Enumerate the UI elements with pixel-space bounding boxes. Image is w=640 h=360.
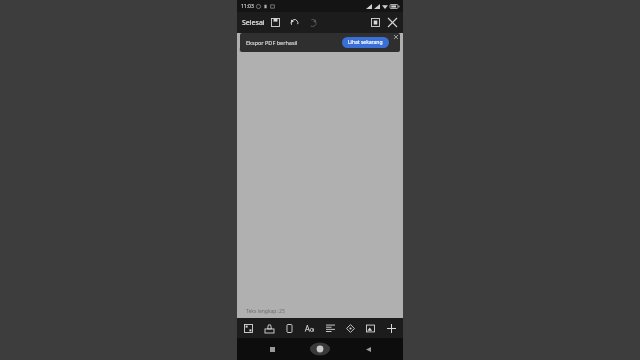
button[interactable]: Lihat sekarang [342,37,389,48]
button[interactable]: Close [385,15,400,30]
button[interactable]: Save [268,15,283,30]
button[interactable]: Image [362,318,379,338]
staticText: Teks lengkap: 25 [246,308,285,315]
staticText: Selesai [242,18,265,28]
button[interactable]: Align [322,318,339,338]
button[interactable]: Home [307,338,333,360]
button[interactable]: Stamp [261,318,278,338]
staticText: U [239,47,243,54]
button[interactable]: Back [358,339,378,359]
button[interactable]: Collage [240,318,257,338]
button[interactable]: Redo [305,15,320,30]
staticText: 11:03 [241,3,254,10]
button[interactable]: Page view [368,15,383,30]
button[interactable]: Add [383,318,400,338]
button[interactable]: Selesai [237,15,268,31]
button[interactable]: Shape [342,318,359,338]
button[interactable]: Text [301,318,318,338]
button[interactable]: Page [281,318,298,338]
button[interactable]: Undo [287,15,302,30]
button[interactable]: Recents [262,339,282,359]
staticText: Ekspor PDF berhasil [246,39,298,46]
staticText: Lihat sekarang [348,39,383,46]
button[interactable]: Dismiss [392,33,399,40]
